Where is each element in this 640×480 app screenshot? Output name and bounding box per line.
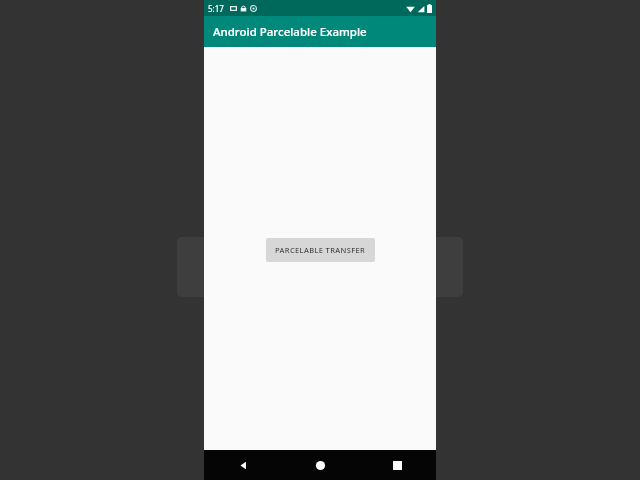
staticText: PARCELABLE TRANSFER [275, 245, 366, 255]
staticText: Android Parcelable Example [213, 24, 367, 40]
staticText: 5:17 [208, 3, 224, 14]
button[interactable]: PARCELABLE TRANSFER [266, 238, 375, 262]
staticText: PARCELABLE TRANSFER [177, 237, 463, 297]
button[interactable]: Recent apps [359, 450, 436, 480]
button[interactable]: Home [282, 450, 359, 480]
button[interactable]: Back [204, 450, 282, 480]
